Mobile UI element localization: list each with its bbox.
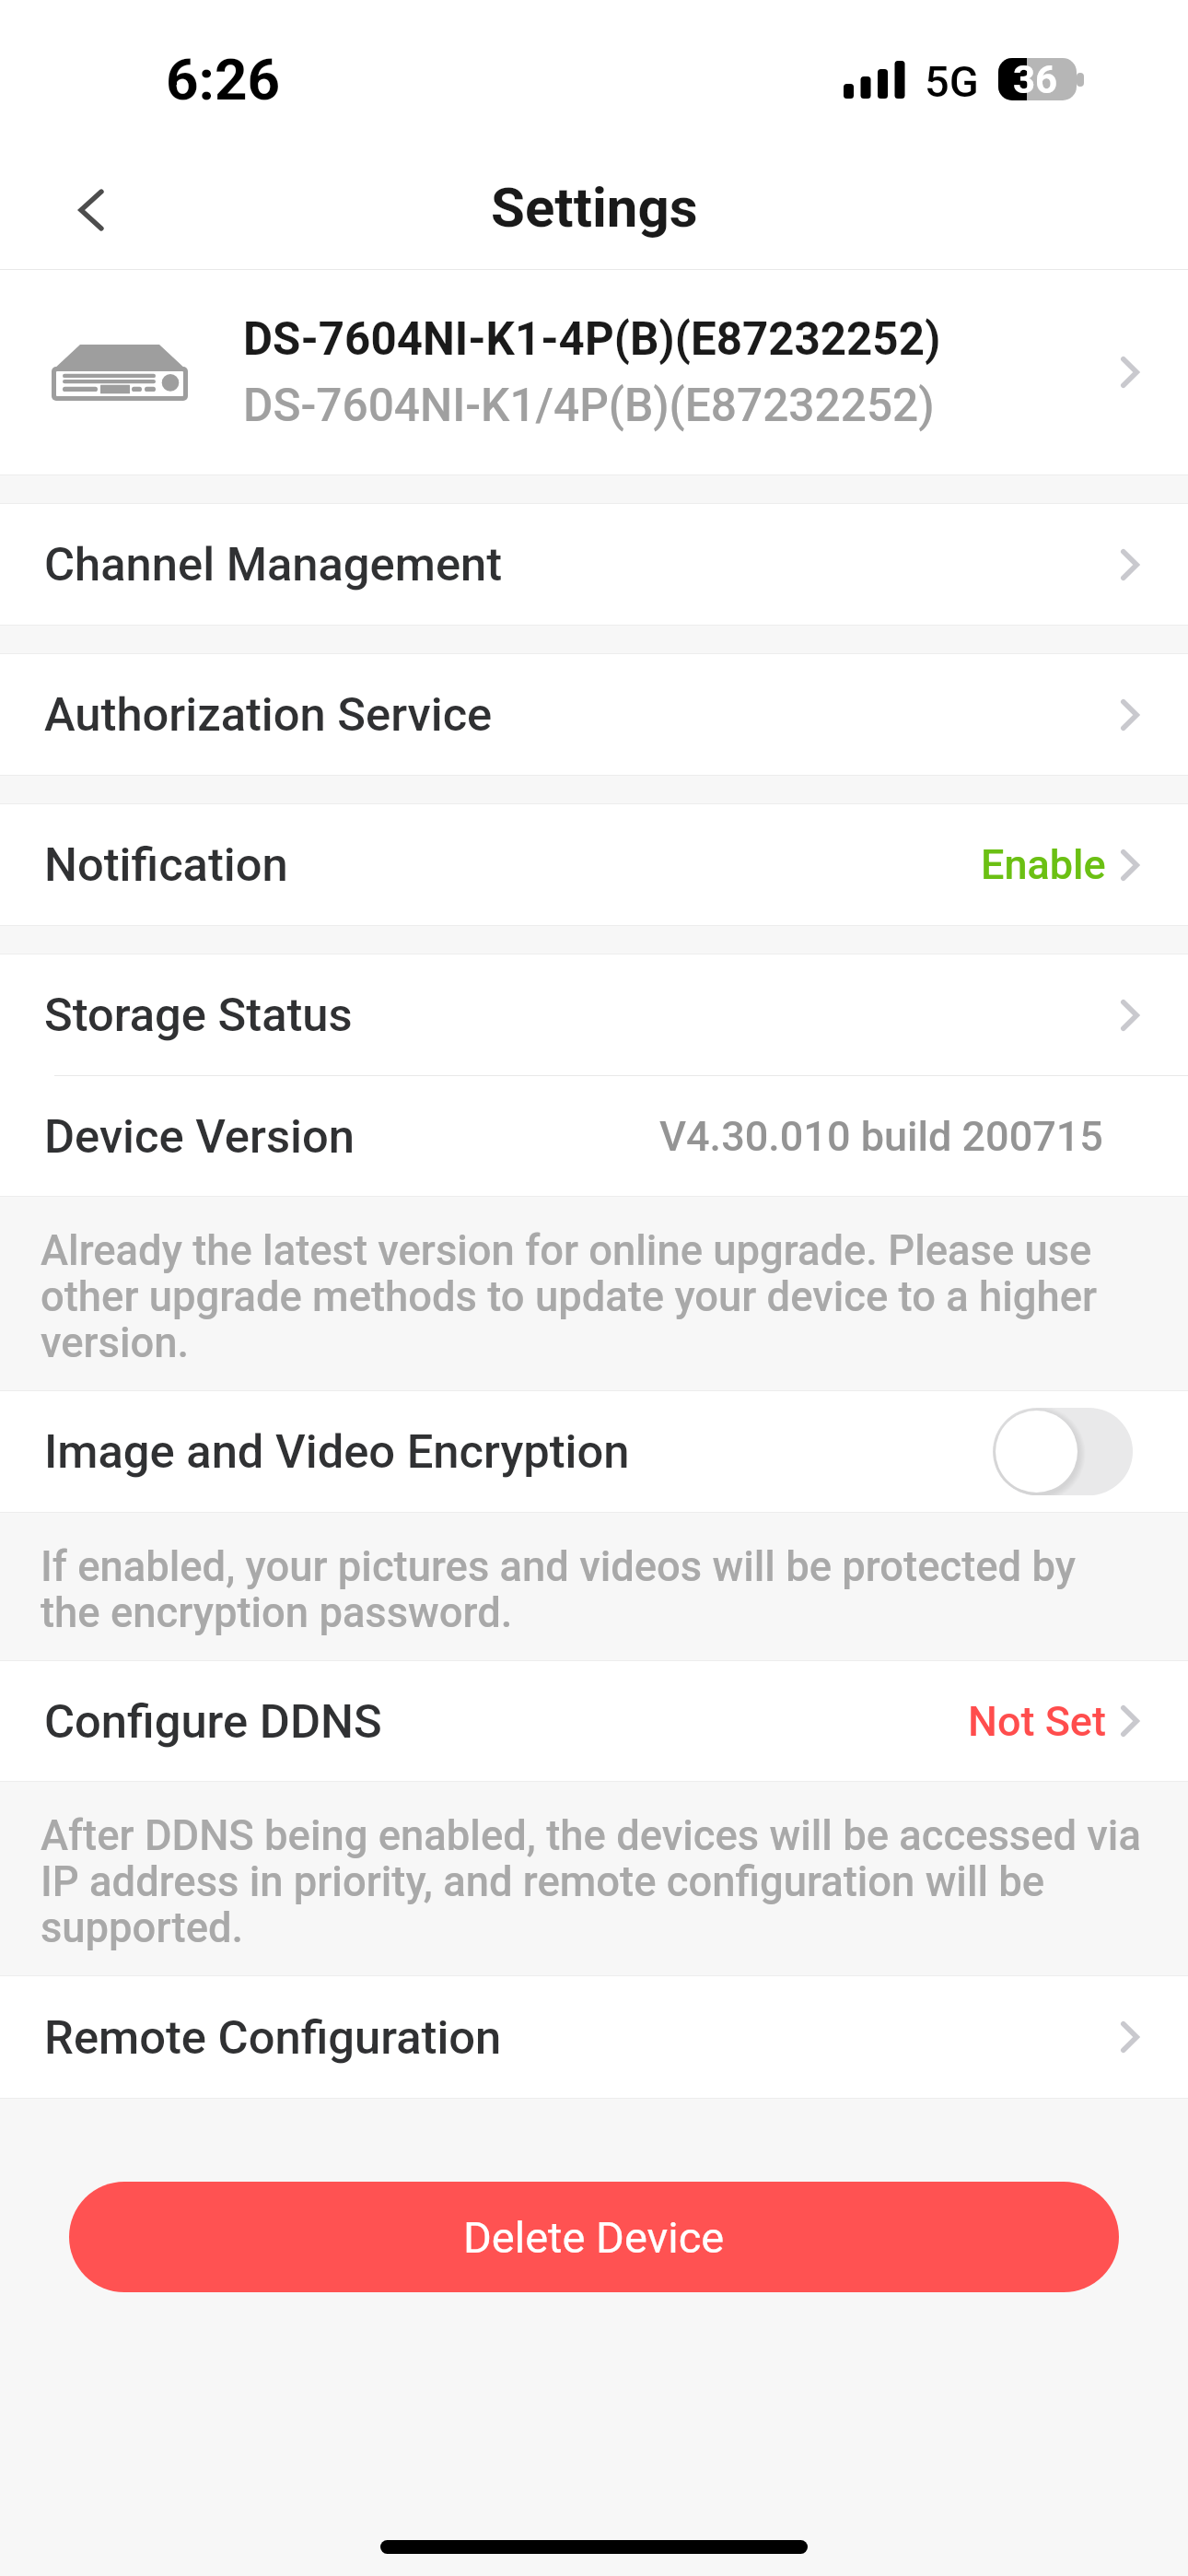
button[interactable]: Authorization Service	[0, 654, 1188, 775]
staticText: Settings	[491, 175, 698, 240]
staticText: Storage Status	[44, 988, 353, 1042]
staticText: Channel Management	[44, 537, 503, 591]
button[interactable]: Channel Management	[0, 504, 1188, 625]
staticText: Authorization Service	[44, 687, 493, 742]
staticText: Image and Video Encryption	[44, 1424, 630, 1479]
staticText: 5G	[925, 56, 979, 107]
staticText: Device Version	[44, 1109, 355, 1164]
button[interactable]: Image and Video Encryption	[0, 1391, 1188, 1512]
staticText: DS-7604NI-K1-4P(B)(E87232252)	[243, 312, 941, 366]
staticText: After DDNS being enabled, the devices wi…	[41, 1813, 1143, 1951]
button[interactable]: DS-7604NI-K1-4P(B)(E87232252)	[0, 270, 1188, 474]
staticText: 6:26	[166, 46, 281, 113]
staticText: If enabled, your pictures and videos wil…	[41, 1544, 1143, 1636]
button[interactable]: Delete Device	[69, 2182, 1119, 2292]
button[interactable]: Storage Status	[0, 954, 1188, 1075]
staticText: DS-7604NI-K1/4P(B)(E87232252)	[243, 379, 935, 432]
staticText: Enable	[981, 840, 1106, 889]
button[interactable]: Back	[27, 146, 156, 275]
staticText: Remote Configuration	[44, 2010, 502, 2065]
button[interactable]: Notification	[0, 804, 1188, 925]
staticText: Delete Device	[463, 2212, 725, 2263]
staticText: 36	[1013, 57, 1058, 100]
button[interactable]: Remote Configuration	[0, 1976, 1188, 2098]
staticText: Already the latest version for online up…	[41, 1228, 1143, 1366]
staticText: Configure DDNS	[44, 1694, 382, 1749]
button[interactable]: Image and Video Encryption toggle	[993, 1408, 1133, 1495]
staticText: Not Set	[968, 1697, 1106, 1746]
button[interactable]: Device Version	[0, 1076, 1188, 1196]
button[interactable]: Configure DDNS	[0, 1661, 1188, 1781]
staticText: Notification	[44, 837, 288, 892]
staticText: V4.30.010 build 200715	[659, 1112, 1103, 1161]
